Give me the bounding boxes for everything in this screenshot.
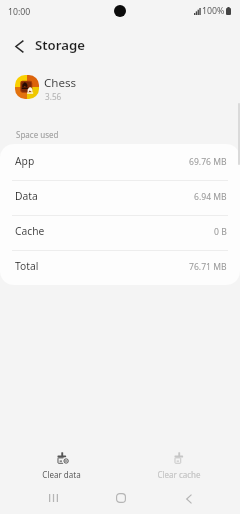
staticText: App xyxy=(15,154,35,168)
button[interactable]: Clear data xyxy=(0,436,120,484)
button[interactable]: Back xyxy=(170,485,207,513)
staticText: 10:00 xyxy=(8,6,31,18)
staticText: 0 B xyxy=(214,226,227,238)
staticText: 3.56 xyxy=(45,91,62,102)
staticText: 6.94 MB xyxy=(194,191,227,203)
button[interactable]: Chess xyxy=(0,66,240,110)
staticText: Clear cache xyxy=(157,469,201,480)
staticText: Data xyxy=(15,189,38,203)
button[interactable]: Cache xyxy=(0,214,240,249)
button[interactable]: Data xyxy=(0,179,240,214)
staticText: Total xyxy=(15,259,39,273)
button[interactable]: Home xyxy=(102,484,139,512)
button[interactable]: Clear cache xyxy=(120,436,240,484)
staticText: Space used xyxy=(16,129,59,140)
button[interactable]: Navigate up xyxy=(7,34,31,58)
staticText: 76.71 MB xyxy=(189,261,227,273)
staticText: Clear data xyxy=(42,469,81,480)
button[interactable]: Total xyxy=(0,249,240,284)
staticText: Storage xyxy=(35,36,85,54)
button[interactable]: Recent apps xyxy=(35,484,72,512)
staticText: 69.76 MB xyxy=(189,156,227,168)
button[interactable]: App xyxy=(0,144,240,179)
staticText: Cache xyxy=(15,224,45,238)
staticText: Chess xyxy=(44,75,77,91)
staticText: 100% xyxy=(202,5,225,17)
